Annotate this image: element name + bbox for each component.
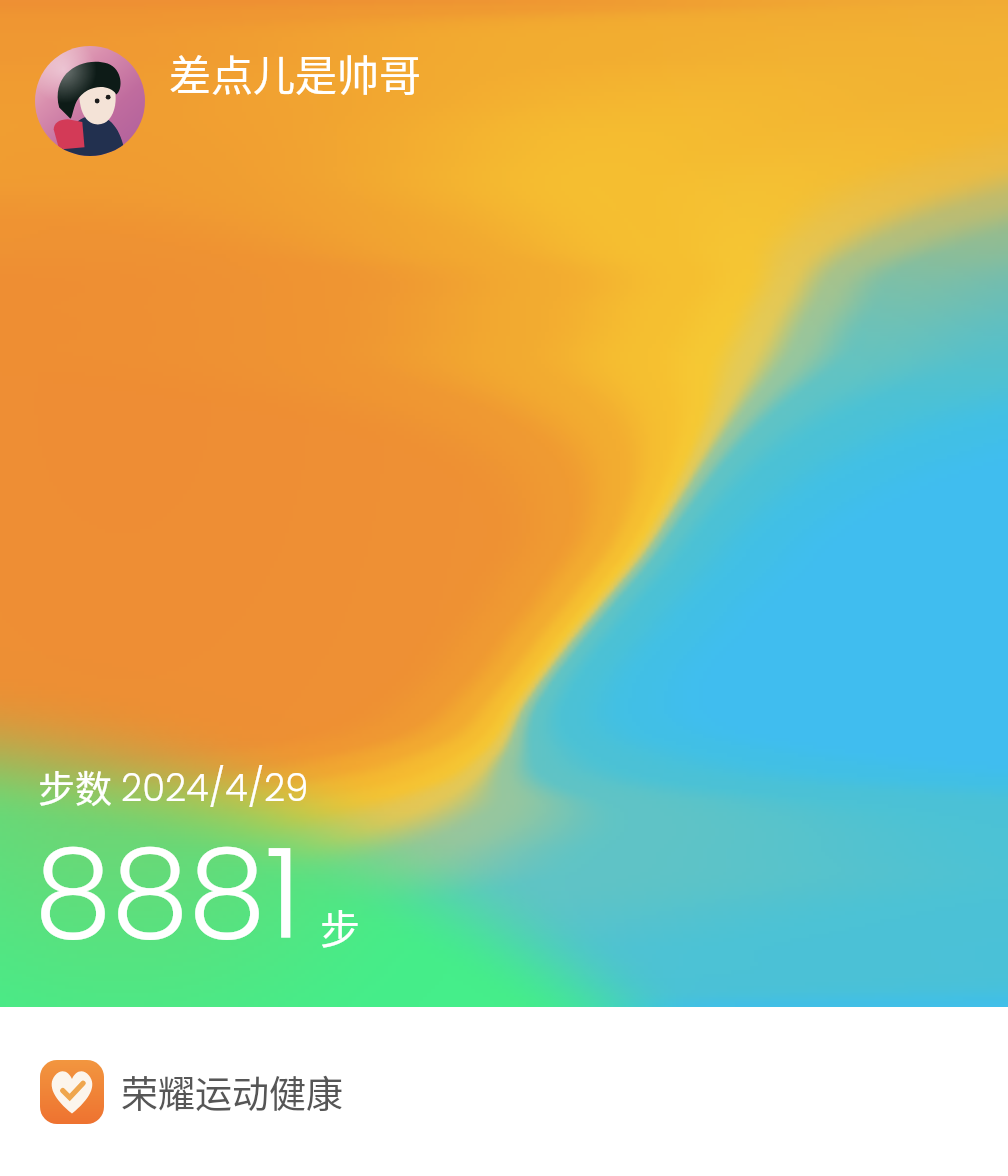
staticText: 步 (320, 898, 360, 956)
staticText: 步数 (38, 760, 112, 814)
staticText: 2024/4/29 (121, 762, 309, 814)
button[interactable]: 荣耀运动健康 (40, 1007, 1008, 1176)
staticText: 荣耀运动健康 (121, 1065, 343, 1119)
staticText: 差点儿是帅哥 (169, 42, 422, 103)
staticText: 8881 (34, 806, 301, 981)
button[interactable]: 荣耀运动健康 (40, 1060, 104, 1124)
button[interactable]: 差点儿是帅哥 (35, 46, 422, 156)
